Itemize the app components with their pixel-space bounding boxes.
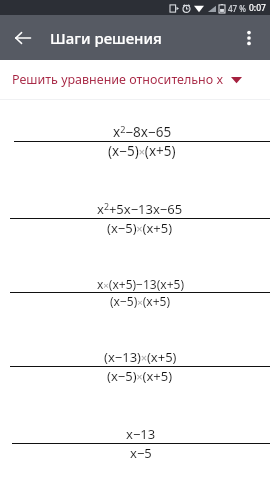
staticText: 47 % [228,3,246,14]
staticText: x2−8x−65 [113,123,172,141]
staticText: (x−5)×(x+5) [107,219,173,237]
button[interactable]: x2−8x−65 [0,100,270,169]
staticText: 0:07 [249,2,266,14]
button[interactable]: Решить уравнение относительно x [0,60,270,99]
staticText: (x−5)×(x+5) [107,367,173,385]
staticText: (x−5)×(x+5) [108,142,176,160]
staticText: x×(x+5)−13(x+5) [97,276,184,292]
staticText: (x−13)×(x+5) [104,348,177,366]
staticText: x2+5x−13x−65 [97,200,183,218]
staticText: Шаги решения [50,28,162,48]
staticText: Решить уравнение относительно x [12,71,224,88]
button[interactable]: (x−13)×(x+5) [0,317,270,394]
button[interactable]: x2+5x−13x−65 [0,169,270,246]
button[interactable]: More options [232,21,266,55]
staticText: x−5 [130,444,152,462]
button[interactable]: Back [6,21,40,55]
button[interactable]: x×(x+5)−13(x+5) [0,246,270,317]
staticText: x−13 [126,425,156,443]
staticText: (x−5)×(x+5) [110,293,171,309]
button[interactable]: x−13 [0,394,270,471]
